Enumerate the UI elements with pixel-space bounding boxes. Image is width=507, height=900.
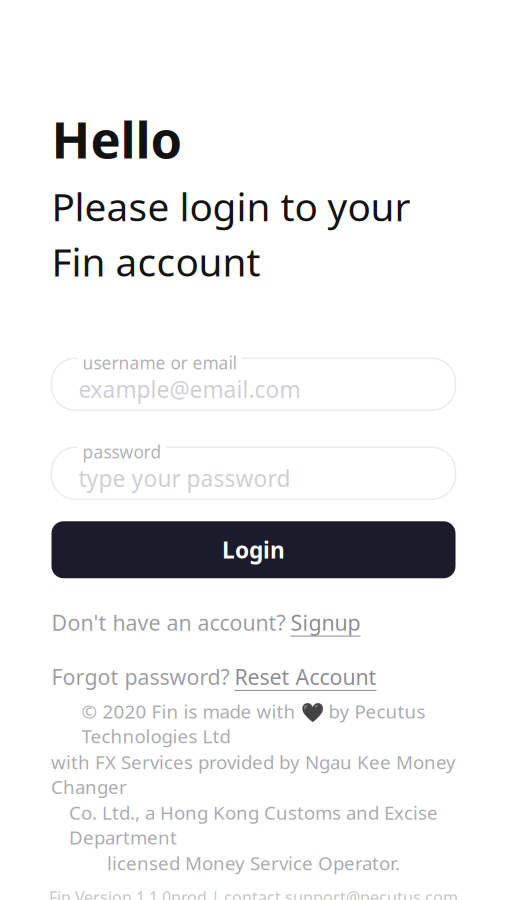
- staticText: example@email.com: [78, 374, 300, 404]
- staticText: Signup: [290, 608, 360, 637]
- staticText: Please login to your: [51, 181, 410, 232]
- staticText: Hello: [51, 105, 182, 173]
- staticText: Fin account: [51, 236, 260, 287]
- staticText: password: [82, 440, 161, 463]
- staticText: username or email: [82, 351, 236, 374]
- button[interactable]: Don't have an account?: [51, 608, 455, 637]
- staticText: Login: [222, 535, 285, 565]
- staticText: Co. Ltd., a Hong Kong Customs and Excise…: [69, 800, 438, 850]
- staticText: licensed Money Service Operator.: [107, 851, 400, 875]
- staticText: Forgot password?: [51, 663, 229, 691]
- staticText: Don't have an account?: [51, 608, 285, 637]
- staticText: Reset Account: [234, 663, 376, 691]
- button[interactable]: Login: [51, 521, 455, 578]
- staticText: type your password: [78, 463, 290, 493]
- staticText: with FX Services provided by Ngau Kee Mo…: [51, 749, 456, 799]
- button[interactable]: Forgot password?: [51, 663, 455, 691]
- staticText: © 2020 Fin is made with 🖤 by Pecutus Tec…: [81, 699, 425, 748]
- staticText: Fin Version 1.1.0prod | contact support@…: [49, 886, 458, 900]
